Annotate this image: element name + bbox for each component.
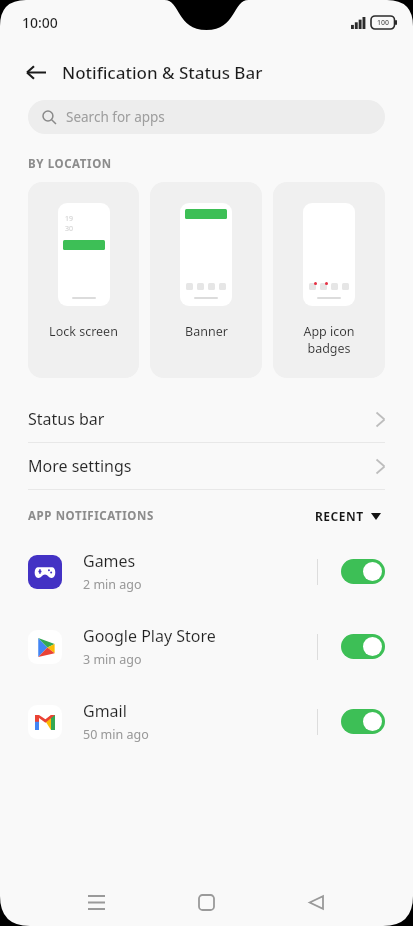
button[interactable]: Back: [293, 879, 339, 925]
staticText: 100: [377, 18, 390, 28]
staticText: Banner: [185, 323, 228, 340]
staticText: Status bar: [28, 408, 105, 430]
staticText: APP NOTIFICATIONS: [28, 508, 154, 524]
button[interactable]: Banner: [150, 182, 262, 378]
button[interactable]: Google Play Store: [0, 609, 413, 684]
staticText: Search for apps: [66, 108, 165, 126]
button[interactable]: RECENT: [311, 504, 385, 528]
staticText: Gmail: [83, 700, 127, 722]
staticText: Google Play Store: [83, 625, 216, 647]
staticText: More settings: [28, 455, 132, 477]
button[interactable]: Status bar: [0, 396, 413, 442]
staticText: 3 min ago: [83, 651, 142, 668]
button[interactable]: Gmail: [0, 684, 413, 759]
button[interactable]: Home: [183, 879, 229, 925]
button[interactable]: Toggle Games notifications: [341, 559, 385, 584]
staticText: Games: [83, 550, 136, 572]
staticText: App icon badges: [303, 323, 355, 356]
staticText: BY LOCATION: [28, 156, 112, 172]
button[interactable]: Games: [0, 534, 413, 609]
staticText: 10:00: [22, 13, 58, 32]
staticText: 30: [65, 224, 74, 234]
staticText: RECENT: [315, 508, 364, 524]
staticText: 19: [65, 214, 74, 224]
staticText: Notification & Status Bar: [62, 61, 263, 84]
button[interactable]: Back: [14, 50, 58, 94]
staticText: Lock screen: [49, 323, 118, 340]
button[interactable]: Toggle Gmail notifications: [341, 709, 385, 734]
staticText: 2 min ago: [83, 576, 142, 593]
button[interactable]: More settings: [0, 443, 413, 489]
button[interactable]: Toggle Google Play Store notifications: [341, 634, 385, 659]
button[interactable]: Recent apps: [73, 879, 119, 925]
staticText: 50 min ago: [83, 726, 149, 743]
button[interactable]: App icon badges: [273, 182, 385, 378]
button[interactable]: Search for apps: [28, 100, 385, 134]
button[interactable]: 19: [28, 182, 139, 378]
